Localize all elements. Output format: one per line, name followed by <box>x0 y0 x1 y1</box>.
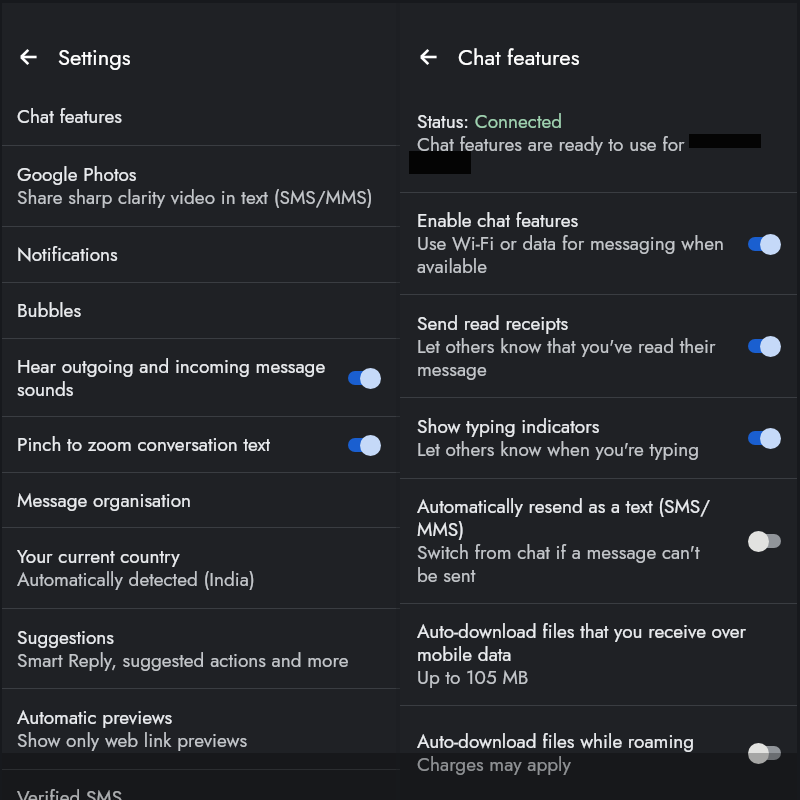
staticText: Status: Connected Chat features are read… <box>417 108 685 158</box>
staticText: Automatically resend as a text (SMS/MMS)… <box>417 493 717 589</box>
button[interactable]: Pinch to zoom conversation text <box>0 417 400 472</box>
button[interactable]: Notifications <box>0 227 400 282</box>
staticText: Show typing indicators Let others know w… <box>417 413 700 463</box>
staticText: Bubbles <box>17 297 82 324</box>
button[interactable]: Show typing indicators Let others know w… <box>400 398 800 478</box>
button[interactable]: Your current country Automatically detec… <box>0 528 400 608</box>
staticText: Settings <box>58 41 131 73</box>
button[interactable]: Hear outgoing and incoming message sound… <box>0 339 400 416</box>
staticText: Send read receipts Let others know that … <box>417 310 729 383</box>
button[interactable]: Suggestions Smart Reply, suggested actio… <box>0 609 400 688</box>
staticText: Message organisation <box>17 487 192 514</box>
staticText: Automatic previews Show only web link pr… <box>17 704 248 754</box>
staticText: Auto-download files that you receive ove… <box>417 618 781 691</box>
staticText: Chat features <box>458 41 580 73</box>
staticText: Your current country Automatically detec… <box>17 543 255 593</box>
staticText: Enable chat features Use Wi-Fi or data f… <box>417 207 729 280</box>
button[interactable]: Automatically resend as a text (SMS/MMS)… <box>400 479 800 603</box>
button[interactable]: Automatic previews Show only web link pr… <box>0 689 400 769</box>
staticText: Hear outgoing and incoming message sound… <box>17 353 329 403</box>
staticText: Pinch to zoom conversation text <box>17 431 271 458</box>
staticText: Notifications <box>17 241 118 268</box>
button[interactable]: Google Photos Share sharp clarity video … <box>0 146 400 226</box>
button[interactable]: Back <box>9 44 47 70</box>
staticText: Chat features <box>17 103 122 130</box>
button[interactable]: Message organisation <box>0 473 400 527</box>
staticText: Auto-download files while roaming Charge… <box>417 728 695 778</box>
staticText: Suggestions Smart Reply, suggested actio… <box>17 624 349 674</box>
staticText: Google Photos Share sharp clarity video … <box>17 161 373 211</box>
button[interactable]: Auto-download files that you receive ove… <box>400 604 800 705</box>
button[interactable]: Back <box>409 44 447 70</box>
button[interactable]: Chat features <box>0 88 400 145</box>
button[interactable]: Bubbles <box>0 283 400 338</box>
button[interactable]: Auto-download files while roaming Charge… <box>400 706 800 800</box>
button[interactable]: Send read receipts Let others know that … <box>400 295 800 397</box>
staticText: Verified SMS <box>17 784 123 800</box>
button[interactable]: Enable chat features Use Wi-Fi or data f… <box>400 193 800 294</box>
